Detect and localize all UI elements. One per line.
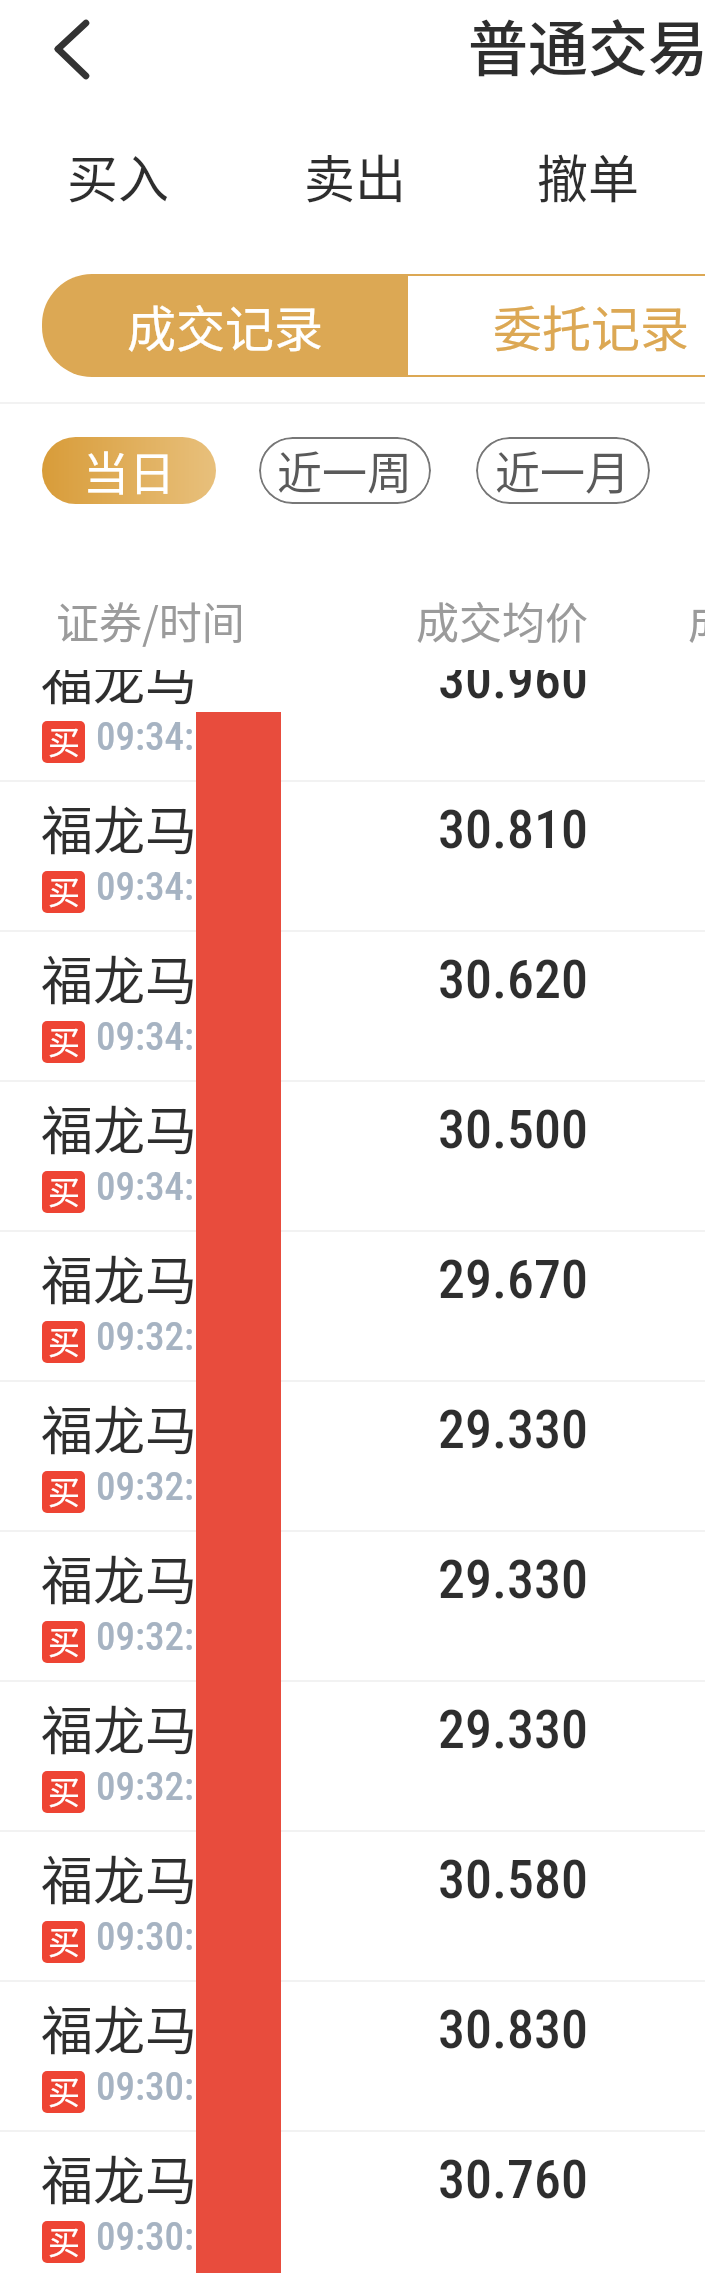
staticText: 近一周 [277,438,413,503]
staticText: 福龙马 [41,1540,198,1615]
staticText: 09:32: [96,1614,194,1660]
button[interactable]: 福龙马 [0,1082,705,1232]
button[interactable]: 近一月 [476,437,650,504]
staticText: 买 [48,1021,81,1059]
staticText: 买 [48,1171,81,1209]
button[interactable]: 卖出 [304,139,407,213]
staticText: 30.500 [438,1098,589,1161]
staticText: 普通交易 [468,1,705,88]
staticText: 买 [48,1921,81,1959]
staticText: 福龙马 [41,1840,198,1915]
button[interactable]: 成交记录 [42,274,408,377]
button[interactable]: 福龙马 [0,932,705,1082]
staticText: 成交记录 [127,290,324,361]
staticText: 30.960 [438,670,589,711]
staticText: 买 [48,1471,81,1509]
staticText: 福龙马 [41,1690,198,1765]
staticText: 09:30: [96,2064,194,2110]
staticText: 09:32: [96,1314,194,1360]
staticText: 29.330 [438,1398,589,1461]
staticText: 29.670 [438,1248,589,1311]
button[interactable]: 福龙马 [0,2132,705,2277]
staticText: 成交数量 [688,589,705,651]
button[interactable]: 福龙马 [0,1832,705,1982]
staticText: 福龙马 [41,940,198,1015]
button[interactable]: 福龙马 [0,1682,705,1832]
staticText: 福龙马 [41,1090,198,1165]
staticText: 买 [48,871,81,909]
staticText: 09:32: [96,1464,194,1510]
staticText: 30.620 [438,948,589,1011]
staticText: 09:30: [96,1914,194,1960]
staticText: 09:32: [96,1764,194,1810]
staticText: 福龙马 [41,1990,198,2065]
button[interactable]: 撤单 [537,139,640,213]
button[interactable]: 福龙马 [0,670,705,782]
staticText: 买 [48,2071,81,2109]
staticText: 买 [48,1321,81,1359]
staticText: 福龙马 [41,2140,198,2215]
button[interactable]: 委托记录 [408,274,705,377]
button[interactable]: 当日 [42,437,216,504]
staticText: 证券/时间 [56,589,245,651]
staticText: 福龙马 [41,1390,198,1465]
staticText: 买 [48,1621,81,1659]
button[interactable]: Back [20,8,100,92]
staticText: 买 [48,721,81,759]
button[interactable]: 福龙马 [0,1532,705,1682]
staticText: 福龙马 [41,790,198,865]
staticText: 买 [48,1771,81,1809]
button[interactable]: 福龙马 [0,1982,705,2132]
staticText: 30.830 [438,1998,589,2061]
staticText: 29.330 [438,1698,589,1761]
button[interactable]: 福龙马 [0,1232,705,1382]
staticText: 30.580 [438,1848,589,1911]
staticText: 09:34: [96,1014,194,1060]
staticText: 成交均价 [416,589,588,651]
staticText: 09:34: [96,864,194,910]
button[interactable]: 近一周 [259,437,431,504]
staticText: 30.810 [438,798,589,861]
button[interactable]: 福龙马 [0,782,705,932]
staticText: 09:34: [96,1164,194,1210]
staticText: 当日 [83,437,175,504]
staticText: 福龙马 [41,670,198,715]
staticText: 09:30: [96,2214,194,2260]
staticText: 近一月 [495,438,631,503]
staticText: 委托记录 [493,290,690,361]
staticText: 30.760 [438,2148,589,2211]
staticText: 买 [48,2221,81,2259]
staticText: 福龙马 [41,1240,198,1315]
staticText: 09:34: [96,714,194,760]
button[interactable]: 买入 [67,139,170,213]
button[interactable]: 福龙马 [0,1382,705,1532]
staticText: 29.330 [438,1548,589,1611]
